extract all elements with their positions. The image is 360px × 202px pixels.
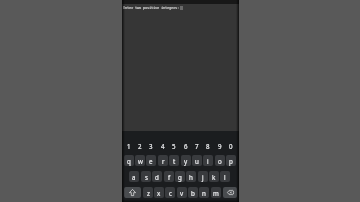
staticText: l [224,173,226,181]
button[interactable]: 7 [192,140,202,152]
staticText: u [195,157,199,165]
button[interactable]: 5 [169,140,179,152]
button[interactable]: u [192,155,202,166]
button[interactable]: v [177,187,187,198]
staticText: 9 [218,142,222,150]
button[interactable]: s [141,171,151,182]
button[interactable]: 4 [158,140,168,152]
staticText: z [147,189,150,197]
staticText: w [138,157,143,165]
button[interactable]: z [143,187,153,198]
staticText: 3 [149,142,153,150]
button[interactable]: j [198,171,208,182]
button[interactable]: n [199,187,209,198]
button[interactable]: x [154,187,164,198]
staticText: d [155,173,159,181]
staticText: r [162,157,165,165]
staticText: q [127,157,131,165]
button[interactable]: g [175,171,185,182]
button[interactable] [223,187,237,198]
staticText: p [229,157,233,165]
button[interactable]: h [186,171,196,182]
button[interactable]: c [165,187,175,198]
button[interactable]: d [152,171,162,182]
staticText: h [189,173,193,181]
staticText: 2 [138,142,142,150]
staticText: g [178,173,182,181]
staticText: b [191,189,195,197]
staticText: k [212,173,216,181]
button[interactable]: e [146,155,156,166]
button[interactable]: m [211,187,221,198]
button[interactable]: k [209,171,219,182]
staticText: n [202,189,206,197]
staticText: y [184,157,188,165]
button[interactable]: 0 [226,140,236,152]
staticText: 4 [161,142,165,150]
button[interactable]: a [129,171,139,182]
button[interactable] [124,187,141,198]
staticText: i [207,157,209,165]
staticText: Enter two positive integers: [123,5,179,10]
button[interactable]: 6 [181,140,191,152]
button[interactable]: b [188,187,198,198]
button[interactable]: 1 [124,140,134,152]
staticText: 7 [195,142,199,150]
staticText: a [132,173,136,181]
staticText: x [157,189,161,197]
staticText: s [145,173,148,181]
staticText: 1 [127,142,131,150]
button[interactable]: 9 [215,140,225,152]
staticText: 6 [184,142,188,150]
staticText: 5 [172,142,176,150]
staticText: t [173,157,176,165]
staticText: 0 [229,142,233,150]
button[interactable]: 2 [135,140,145,152]
button[interactable]: w [135,155,145,166]
staticText: o [218,157,222,165]
button[interactable]: r [158,155,168,166]
button[interactable]: 8 [203,140,213,152]
button[interactable]: t [169,155,179,166]
button[interactable]: p [226,155,236,166]
staticText: 8 [206,142,210,150]
staticText: f [168,173,171,181]
staticText: v [180,189,184,197]
staticText: j [202,173,204,181]
button[interactable]: f [164,171,174,182]
button[interactable]: y [181,155,191,166]
button[interactable]: l [220,171,230,182]
button[interactable]: 3 [146,140,156,152]
button[interactable]: q [124,155,134,166]
staticText: c [169,189,172,197]
button[interactable]: o [215,155,225,166]
button[interactable]: i [203,155,213,166]
staticText: e [149,157,153,165]
staticText: m [213,189,219,197]
